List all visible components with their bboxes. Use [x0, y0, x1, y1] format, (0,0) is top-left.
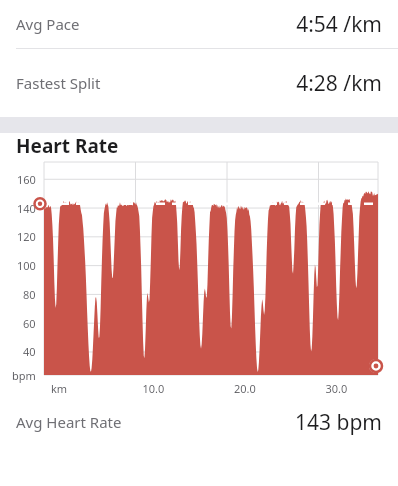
button[interactable]: Avg Pace — [0, 0, 398, 48]
button[interactable]: Fastest Split — [0, 49, 398, 117]
staticText: 4:28 /km — [296, 69, 382, 98]
button[interactable]: Avg Heart Rate — [0, 394, 398, 450]
staticText: Avg Pace — [16, 14, 80, 34]
staticText: Avg Heart Rate — [16, 412, 122, 432]
staticText: Fastest Split — [16, 73, 101, 93]
staticText: 4:54 /km — [296, 10, 382, 39]
staticText: Heart Rate — [16, 133, 119, 159]
staticText: 143 bpm — [295, 408, 382, 437]
